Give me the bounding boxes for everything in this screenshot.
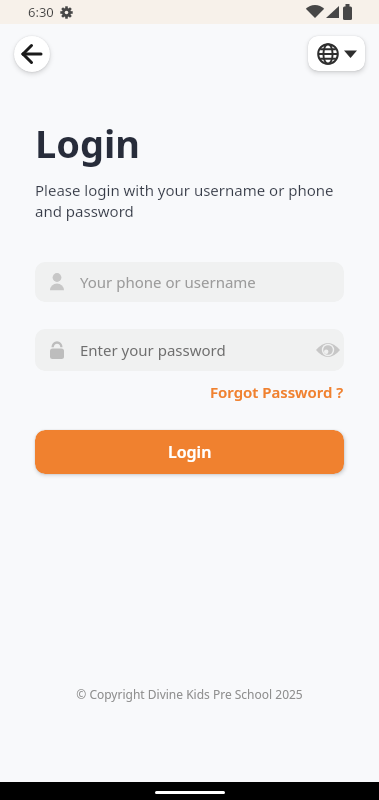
- staticText: Login: [168, 441, 212, 463]
- staticText: © Copyright Divine Kids Pre School 2025: [0, 686, 379, 702]
- staticText: Please login with your username or phone…: [35, 180, 334, 222]
- button[interactable]: Forgot Password ?: [210, 382, 344, 402]
- button[interactable]: Login: [35, 430, 344, 474]
- staticText: 6:30: [28, 3, 54, 21]
- button[interactable]: Your phone or username: [35, 262, 344, 302]
- staticText: Login: [35, 117, 141, 169]
- button[interactable]: Enter your password: [35, 329, 344, 371]
- staticText: Your phone or username: [80, 272, 256, 292]
- button[interactable]: [308, 36, 365, 71]
- staticText: Enter your password: [80, 340, 226, 360]
- button[interactable]: [14, 36, 50, 72]
